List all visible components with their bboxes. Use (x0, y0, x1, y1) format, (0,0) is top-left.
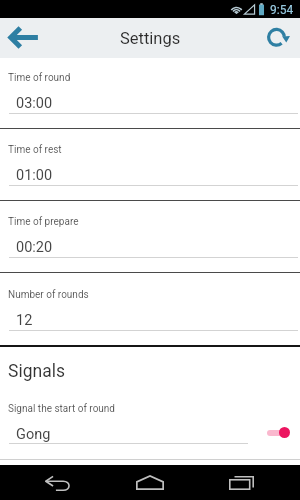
button[interactable]: Recent apps (217, 465, 265, 500)
button[interactable]: Navigate up (0, 18, 47, 58)
staticText: 01:00 (16, 167, 53, 184)
staticText: 00:20 (16, 239, 53, 256)
staticText: 12 (16, 312, 33, 329)
staticText: 9:54 (270, 3, 294, 17)
button[interactable]: Home (126, 465, 174, 500)
button[interactable]: Signal the start of round toggle (262, 417, 294, 441)
button[interactable]: Number of rounds (0, 273, 300, 345)
button[interactable]: Time of prepare (0, 201, 300, 272)
button[interactable]: Back (34, 465, 82, 500)
button[interactable]: Signal the start of round (0, 395, 300, 459)
staticText: Time of rest (8, 144, 62, 156)
button[interactable]: Time of rest (0, 129, 300, 200)
staticText: Settings (120, 29, 181, 48)
staticText: Time of round (8, 72, 71, 84)
staticText: Signal the start of round (8, 403, 116, 415)
staticText: 03:00 (16, 95, 53, 112)
staticText: Gong (16, 426, 51, 443)
button[interactable]: Reset (261, 18, 300, 58)
button[interactable]: Time of round (0, 58, 300, 128)
staticText: Signals (8, 361, 65, 382)
staticText: Number of rounds (8, 289, 89, 301)
staticText: Time of prepare (8, 216, 79, 228)
